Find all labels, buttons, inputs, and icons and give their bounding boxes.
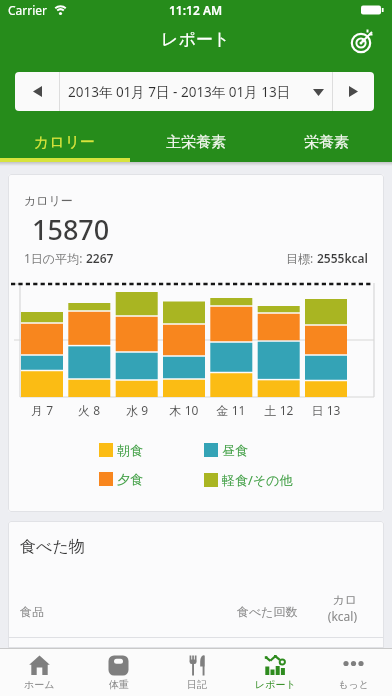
button[interactable]: 体重 [79, 649, 158, 696]
staticText: 1日の平均: [24, 250, 86, 266]
staticText: 昼食 [222, 442, 248, 458]
staticText: カロリー [34, 133, 96, 152]
staticText: 2267 [86, 250, 114, 266]
staticText: 食品 [20, 604, 44, 619]
staticText: 水 9 [112, 402, 162, 418]
staticText: レポート [255, 678, 296, 691]
button[interactable]: 2013年 01月 7日 - 2013年 01月 13日 [60, 72, 332, 111]
staticText: 食べた回数 [237, 604, 298, 619]
staticText: もっと [338, 678, 369, 691]
staticText: 月 7 [17, 402, 67, 418]
staticText: 火 8 [64, 402, 114, 418]
staticText: 目標: [286, 250, 317, 266]
staticText: 金 11 [206, 402, 256, 418]
staticText: 栄養素 [304, 133, 349, 152]
staticText: 15870 [32, 211, 110, 248]
staticText: 朝食 [117, 442, 143, 458]
button[interactable] [348, 28, 376, 56]
button[interactable]: 主栄養素 [130, 111, 261, 162]
staticText: 夕食 [117, 471, 143, 487]
staticText: カロリー [24, 193, 73, 208]
button[interactable]: 栄養素 [261, 111, 392, 162]
staticText: 土 12 [254, 402, 304, 418]
staticText: 主栄養素 [166, 133, 226, 152]
staticText: カロ (kcal) [297, 592, 357, 625]
button[interactable]: レポート [236, 649, 314, 696]
button[interactable]: 日記 [158, 649, 236, 696]
button[interactable]: もっと [314, 649, 392, 696]
button[interactable] [333, 72, 374, 111]
button[interactable] [15, 72, 59, 111]
staticText: 軽食/その他 [222, 471, 293, 489]
staticText: Carrier [8, 2, 48, 18]
button[interactable]: ホーム [0, 649, 79, 696]
staticText: 日記 [187, 678, 207, 691]
staticText: ホーム [24, 678, 55, 691]
staticText: 日 13 [301, 402, 351, 418]
staticText: 食べた物 [20, 537, 85, 557]
staticText: 体重 [109, 678, 129, 691]
staticText: 2013年 01月 7日 - 2013年 01月 13日 [68, 83, 291, 101]
button[interactable]: カロリー [0, 111, 130, 162]
staticText: 2555kcal [317, 250, 368, 266]
staticText: 木 10 [159, 402, 209, 418]
staticText: レポート [161, 29, 231, 50]
staticText: 11:12 AM [169, 2, 223, 18]
